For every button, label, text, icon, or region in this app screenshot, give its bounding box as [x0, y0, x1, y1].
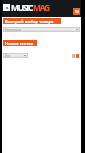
- staticText: Все: [5, 54, 11, 58]
- button[interactable]: Новые статьи: [3, 40, 37, 46]
- button[interactable]: Категории: [3, 27, 80, 32]
- button[interactable]: Быстрый выбор товара: [3, 18, 61, 24]
- staticText: MAG: [33, 2, 49, 14]
- button[interactable]: Menu: [73, 8, 80, 15]
- staticText: MUSIC: [11, 2, 33, 14]
- staticText: Категории: [5, 28, 22, 32]
- staticText: Быстрый выбор товара: [5, 19, 54, 24]
- staticText: Новые статьи: [5, 41, 34, 46]
- button[interactable]: Все: [3, 53, 28, 58]
- button[interactable]: Home: [3, 4, 10, 11]
